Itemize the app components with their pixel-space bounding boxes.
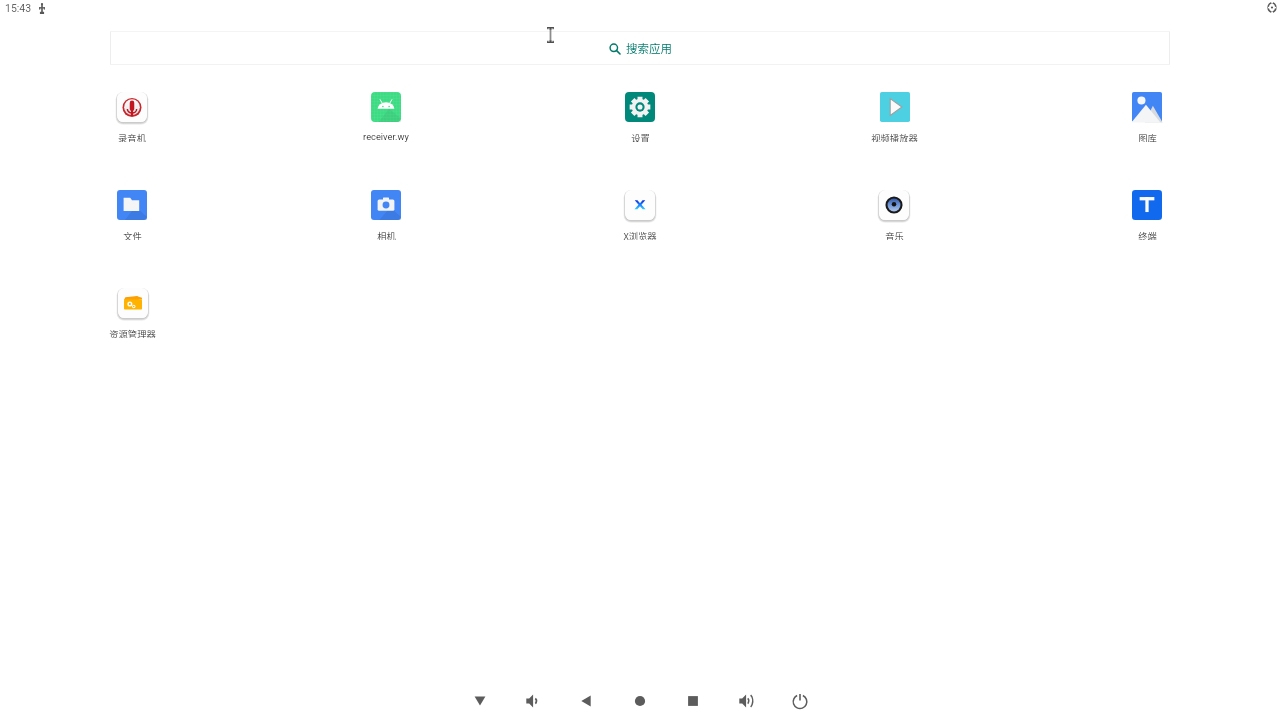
- staticText: 设置: [631, 131, 650, 142]
- staticText: 终端: [1138, 229, 1157, 240]
- button[interactable]: 文件: [77, 184, 187, 240]
- staticText: 搜索应用: [626, 40, 672, 57]
- staticText: 15:43: [5, 2, 32, 14]
- button[interactable]: Home: [622, 683, 658, 719]
- button[interactable]: Volume down: [515, 683, 551, 719]
- staticText: 相机: [377, 229, 396, 240]
- button[interactable]: 图库: [1092, 86, 1202, 142]
- button[interactable]: receiver.wy: [331, 86, 441, 142]
- button[interactable]: 终端: [1092, 184, 1202, 240]
- staticText: 图库: [1138, 131, 1157, 142]
- button[interactable]: 相机: [331, 184, 441, 240]
- button[interactable]: 音乐: [839, 184, 949, 240]
- staticText: 视频播放器: [871, 131, 918, 142]
- staticText: 音乐: [885, 229, 904, 240]
- staticText: 资源管理器: [109, 327, 156, 338]
- button[interactable]: Collapse: [462, 683, 498, 719]
- button[interactable]: 设置: [585, 86, 695, 142]
- button[interactable]: Power: [782, 683, 818, 719]
- staticText: receiver.wy: [363, 131, 409, 142]
- button[interactable]: Recents: [675, 683, 711, 719]
- button[interactable]: X浏览器: [585, 184, 695, 240]
- button[interactable]: Back: [568, 683, 604, 719]
- button[interactable]: 录音机: [77, 86, 187, 142]
- button[interactable]: 资源管理器: [77, 282, 187, 338]
- button[interactable]: Search apps: [110, 31, 1170, 65]
- staticText: 录音机: [118, 131, 146, 142]
- staticText: 文件: [123, 229, 142, 240]
- staticText: X浏览器: [623, 229, 657, 240]
- button[interactable]: 视频播放器: [839, 86, 949, 142]
- button[interactable]: Volume up: [728, 683, 764, 719]
